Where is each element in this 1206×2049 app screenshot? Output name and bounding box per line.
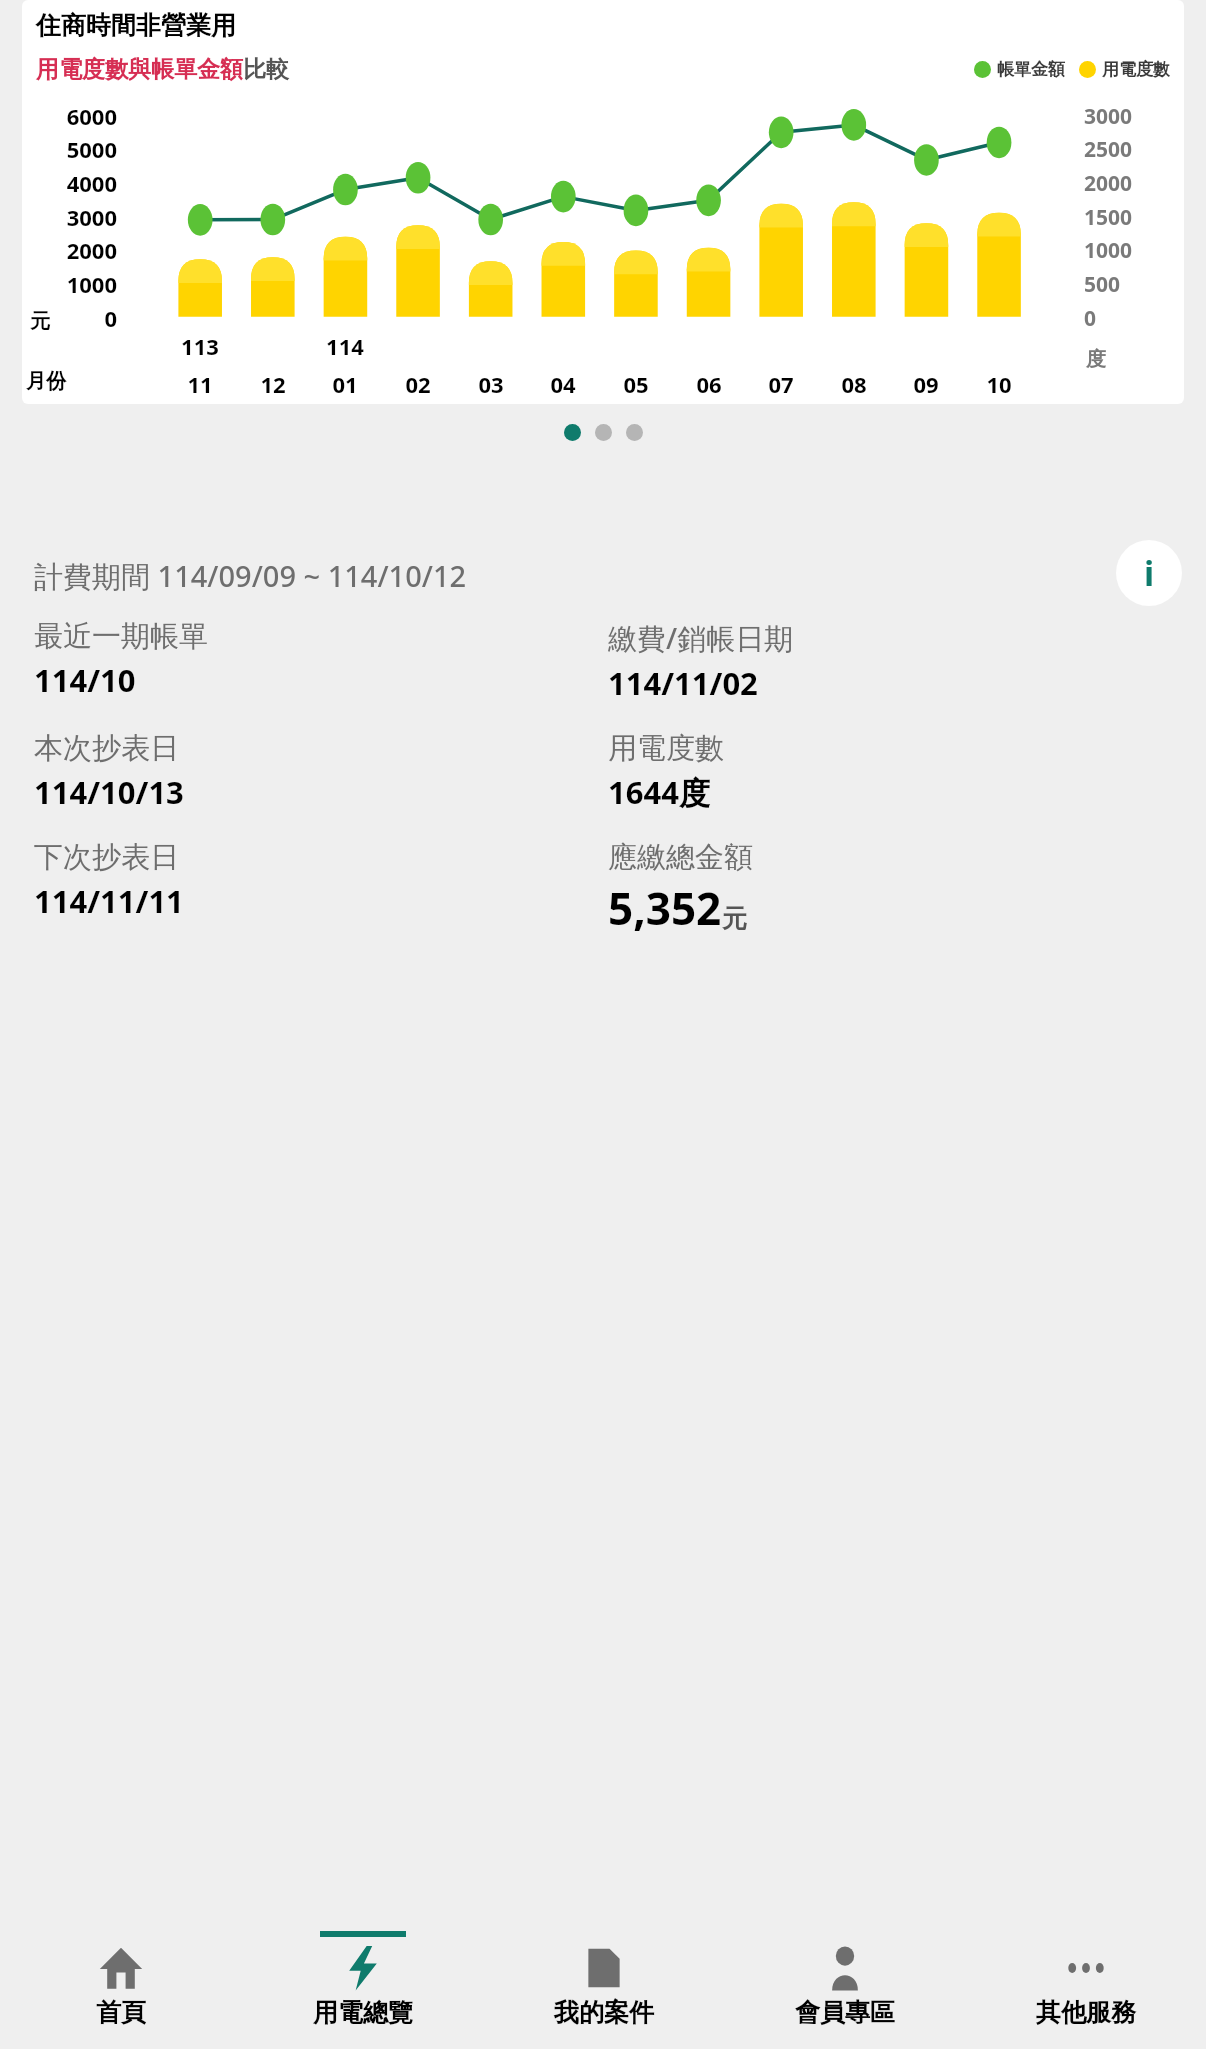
staticText: 5,352 (608, 878, 722, 938)
staticText: 01 (315, 369, 375, 399)
staticText: 0 (1084, 304, 1184, 333)
staticText: 1500 (1084, 203, 1184, 232)
staticText: 帳單金額 (997, 59, 1065, 80)
staticText: 首頁 (96, 1997, 146, 2028)
staticText: 6000 (22, 101, 117, 131)
staticText: 3000 (22, 202, 117, 232)
staticText: 1000 (22, 269, 117, 299)
staticText: 用電度數與帳單金額 (36, 55, 243, 84)
staticText: 2000 (22, 235, 117, 265)
staticText: 最近一期帳單 (34, 618, 208, 655)
staticText: 09 (896, 369, 956, 399)
staticText: 會員專區 (795, 1997, 895, 2028)
staticText: 07 (751, 369, 811, 399)
staticText: i (1144, 550, 1155, 596)
staticText: 月份 (26, 369, 66, 394)
staticText: 114/10 (34, 659, 136, 701)
staticText: 02 (388, 369, 448, 399)
button[interactable] (626, 424, 643, 441)
staticText: 用電總覽 (313, 1997, 413, 2028)
staticText: 繳費/銷帳日期 (608, 618, 794, 658)
staticText: 下次抄表日 (34, 839, 179, 876)
staticText: 12 (243, 369, 303, 399)
button[interactable]: 住商時間非營業用 (22, 0, 1184, 404)
staticText: 比較 (243, 55, 289, 84)
staticText: 住商時間非營業用 (36, 10, 236, 41)
staticText: 元 (722, 903, 747, 934)
staticText: 4000 (22, 168, 117, 198)
staticText: 113 (170, 331, 230, 361)
staticText: 計費期間 114/09/09 ~ 114/10/12 (34, 556, 467, 596)
staticText: 用電度數 (608, 730, 724, 767)
button[interactable] (564, 424, 581, 441)
staticText: 用電度數 (1102, 59, 1170, 80)
staticText: 03 (461, 369, 521, 399)
button[interactable]: 資訊 (1116, 540, 1182, 606)
staticText: 05 (606, 369, 666, 399)
staticText: 其他服務 (1036, 1997, 1136, 2028)
staticText: 500 (1084, 270, 1184, 299)
staticText: 元 (30, 309, 50, 334)
staticText: 本次抄表日 (34, 730, 179, 767)
staticText: 11 (170, 369, 230, 399)
staticText: 5000 (22, 134, 117, 164)
staticText: 3000 (1084, 102, 1184, 131)
staticText: 1644度 (608, 771, 710, 813)
staticText: 04 (533, 369, 593, 399)
staticText: 我的案件 (554, 1997, 654, 2028)
staticText: 114/11/11 (34, 880, 184, 922)
staticText: 114/10/13 (34, 771, 184, 813)
staticText: 1000 (1084, 236, 1184, 265)
staticText: 114 (315, 331, 375, 361)
staticText: 114/11/02 (608, 662, 758, 704)
staticText: 10 (969, 369, 1029, 399)
button[interactable]: 其他服務 (965, 1931, 1206, 2049)
staticText: 06 (679, 369, 739, 399)
staticText: 應繳總金額 (608, 839, 753, 876)
button[interactable]: 用電總覽 (242, 1931, 483, 2049)
staticText: 0 (22, 303, 117, 333)
button[interactable]: 首頁 (0, 1931, 242, 2049)
staticText: 度 (1086, 347, 1106, 372)
staticText: 2000 (1084, 169, 1184, 198)
staticText: 2500 (1084, 135, 1184, 164)
button[interactable]: 我的案件 (483, 1931, 724, 2049)
button[interactable] (595, 424, 612, 441)
button[interactable]: 會員專區 (724, 1931, 965, 2049)
staticText: 08 (824, 369, 884, 399)
